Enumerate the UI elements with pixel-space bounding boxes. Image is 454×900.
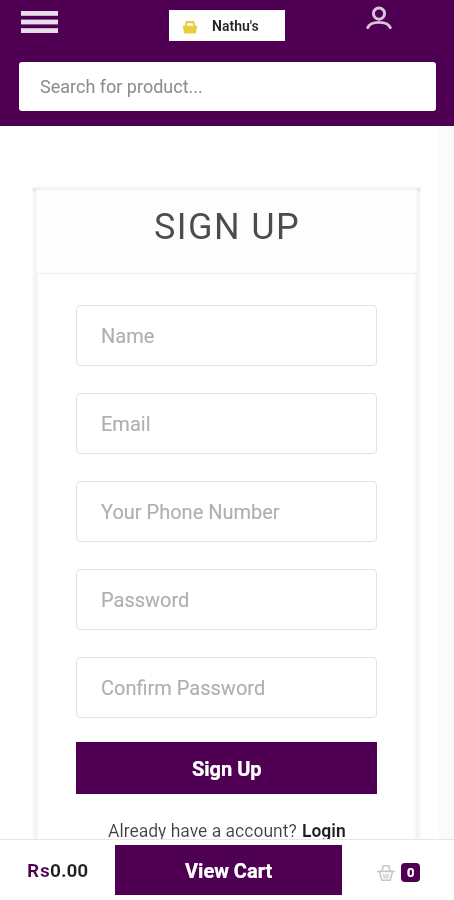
button[interactable]: Account (352, 0, 406, 41)
staticText: s (40, 859, 50, 881)
staticText: SIGN UP (154, 206, 301, 248)
button[interactable]: Name (76, 305, 377, 366)
button[interactable]: Password (76, 569, 377, 630)
staticText: Confirm Password (101, 676, 266, 699)
staticText: Password (101, 588, 190, 611)
staticText: Sign Up (192, 757, 262, 780)
staticText: Nathu's (212, 18, 259, 34)
staticText: 0.00 (50, 859, 89, 881)
button[interactable]: Search for product... (19, 62, 436, 111)
button[interactable]: Confirm Password (76, 657, 377, 718)
button[interactable]: Nathu's (169, 10, 285, 41)
staticText: Already have a account? (108, 821, 302, 839)
button[interactable]: Your Phone Number (76, 481, 377, 542)
staticText: 0 (407, 865, 415, 880)
staticText: Name (101, 324, 155, 347)
button[interactable]: Menu (10, 1, 68, 43)
staticText: Email (101, 412, 151, 435)
staticText: View Cart (185, 859, 273, 882)
staticText: Your Phone Number (101, 500, 280, 523)
button[interactable]: Login (302, 821, 346, 839)
staticText: R (27, 859, 40, 881)
button[interactable]: Email (76, 393, 377, 454)
button[interactable]: Sign Up (76, 742, 377, 794)
staticText: Search for product... (40, 76, 203, 97)
button[interactable]: View Cart (115, 845, 342, 895)
